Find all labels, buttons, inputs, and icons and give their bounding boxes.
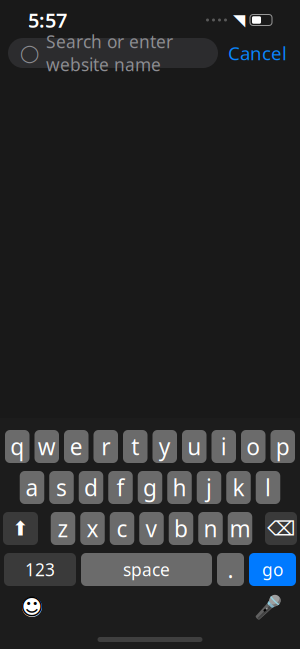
button[interactable]: go <box>249 553 296 586</box>
staticText: i <box>221 431 227 461</box>
staticText: x <box>86 513 98 543</box>
button[interactable]: Dictation <box>251 590 285 624</box>
button[interactable]: x <box>80 512 105 545</box>
button[interactable]: g <box>138 471 162 504</box>
staticText: y <box>159 431 171 461</box>
button[interactable]: s <box>49 471 74 504</box>
staticText: ☺ <box>20 594 44 620</box>
button[interactable]: q <box>5 430 29 463</box>
button[interactable]: b <box>169 512 193 545</box>
button[interactable]: y <box>152 430 177 463</box>
button[interactable]: k <box>226 471 251 504</box>
staticText: j <box>206 472 212 502</box>
staticText: q <box>10 431 24 461</box>
button[interactable]: c <box>110 512 134 545</box>
staticText: t <box>131 431 139 461</box>
staticText: . <box>227 554 233 584</box>
button[interactable]: p <box>270 430 295 463</box>
staticText: k <box>232 472 244 502</box>
staticText: 5:57 <box>28 7 67 33</box>
button[interactable]: . <box>217 553 244 586</box>
staticText: 123 <box>25 558 55 581</box>
staticText: ◯ <box>20 43 39 63</box>
staticText: ⌫ <box>267 517 295 540</box>
button[interactable]: j <box>197 471 221 504</box>
button[interactable]: h <box>167 471 192 504</box>
staticText: f <box>116 472 124 502</box>
staticText: w <box>38 431 56 461</box>
button[interactable]: 123 <box>4 553 76 586</box>
button[interactable]: w <box>34 430 59 463</box>
staticText: space <box>123 558 170 581</box>
staticText: ⬆ <box>12 517 29 540</box>
button[interactable]: Delete <box>265 512 297 545</box>
staticText: p <box>276 431 290 461</box>
staticText: g <box>143 472 157 502</box>
staticText: v <box>145 513 157 543</box>
staticText: s <box>56 472 67 502</box>
staticText: o <box>246 431 260 461</box>
staticText: m <box>229 513 250 543</box>
staticText: z <box>57 513 68 543</box>
staticText: r <box>101 431 110 461</box>
staticText: c <box>116 513 127 543</box>
button[interactable]: m <box>228 512 252 545</box>
staticText: Search or enter website name <box>46 30 173 76</box>
button[interactable]: ◯ <box>8 38 218 68</box>
button[interactable]: n <box>198 512 223 545</box>
staticText: n <box>203 513 217 543</box>
staticText: u <box>187 431 201 461</box>
button[interactable]: Emoji <box>15 590 49 624</box>
staticText: ◥ <box>233 11 245 29</box>
staticText: h <box>172 472 186 502</box>
button[interactable]: Shift <box>3 512 38 545</box>
button[interactable]: d <box>79 471 103 504</box>
staticText: e <box>70 431 83 461</box>
staticText: Cancel <box>228 41 287 65</box>
staticText: b <box>174 513 188 543</box>
staticText: d <box>84 472 98 502</box>
button[interactable]: r <box>93 430 118 463</box>
button[interactable]: o <box>241 430 265 463</box>
button[interactable]: f <box>108 471 133 504</box>
staticText: go <box>262 558 283 581</box>
button[interactable]: i <box>211 430 236 463</box>
button[interactable]: e <box>64 430 88 463</box>
button[interactable]: space <box>81 553 212 586</box>
button[interactable]: v <box>139 512 164 545</box>
staticText: l <box>265 472 271 502</box>
button[interactable]: u <box>182 430 206 463</box>
button[interactable]: t <box>123 430 147 463</box>
button[interactable]: a <box>20 471 44 504</box>
button[interactable]: l <box>256 471 280 504</box>
staticText: a <box>25 472 38 502</box>
button[interactable]: z <box>51 512 75 545</box>
staticText: 🎤 <box>254 594 282 620</box>
button[interactable]: Cancel <box>218 38 297 68</box>
